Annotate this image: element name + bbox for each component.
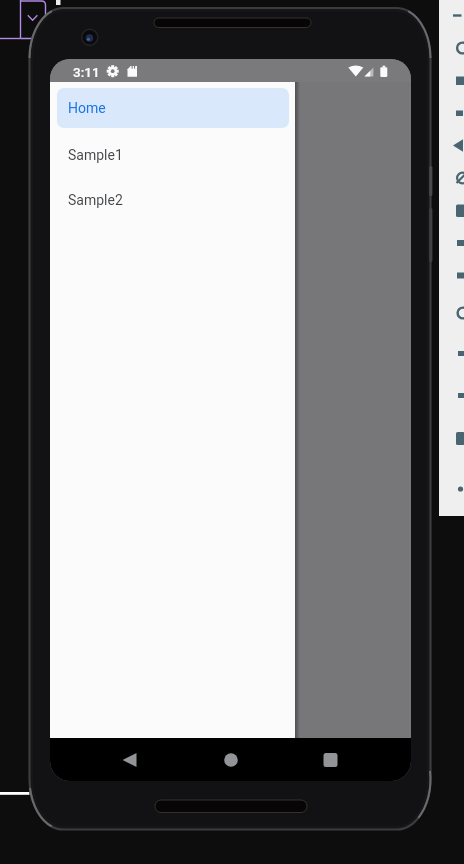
staticText: Home (68, 100, 106, 116)
staticText: Sample1 (68, 147, 123, 163)
staticText: Sample2 (68, 192, 123, 208)
button[interactable]: Sample2 (57, 177, 289, 223)
button[interactable]: Sample1 (57, 132, 289, 178)
button[interactable]: Home (57, 88, 289, 128)
staticText: 3:11 (73, 64, 100, 80)
